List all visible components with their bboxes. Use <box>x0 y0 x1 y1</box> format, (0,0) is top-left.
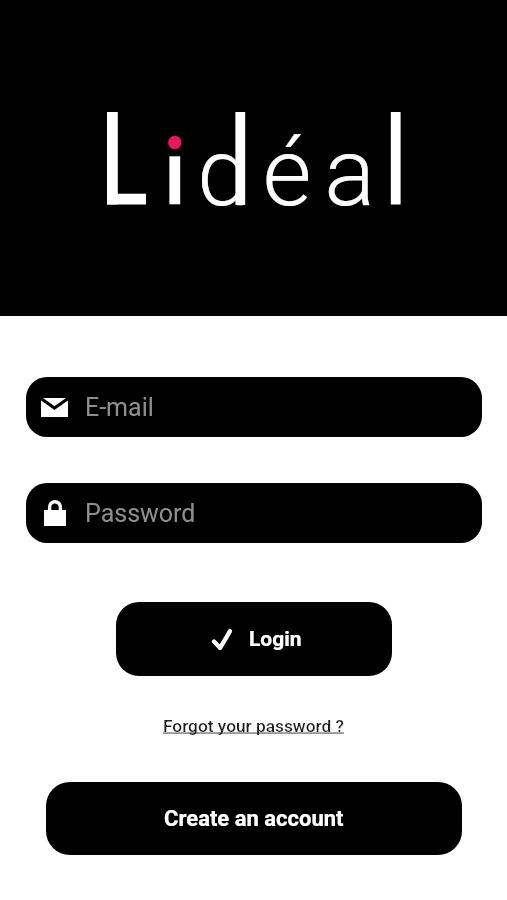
button[interactable]: Create an account <box>46 782 462 855</box>
button[interactable]: Password <box>26 483 482 543</box>
button[interactable]: E-mail <box>26 377 482 437</box>
staticText: Password <box>85 499 196 528</box>
staticText: déa <box>197 117 388 228</box>
staticText: Create an account <box>164 806 344 832</box>
staticText: E-mail <box>85 393 154 422</box>
other: E-mail <box>41 398 68 417</box>
button[interactable]: Login <box>116 602 392 676</box>
other: Password <box>41 500 68 526</box>
staticText: Login <box>249 627 302 652</box>
button[interactable]: Forgot your password ? <box>157 712 350 740</box>
